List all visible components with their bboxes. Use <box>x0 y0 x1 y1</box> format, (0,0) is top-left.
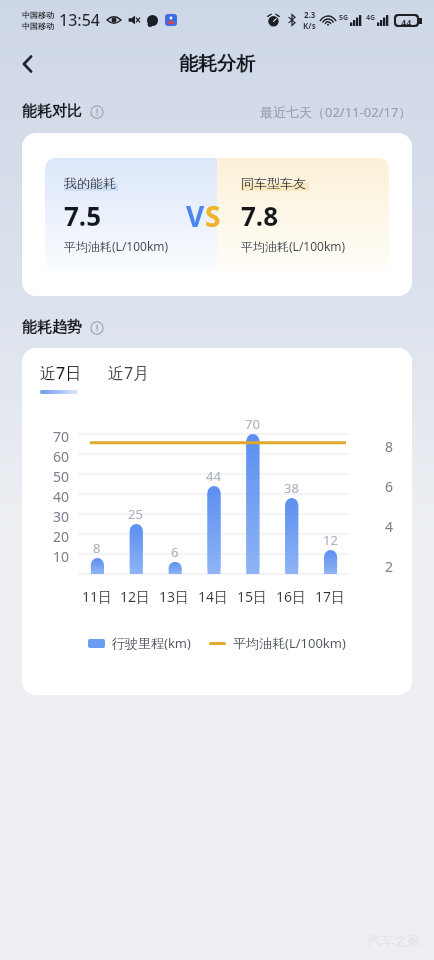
staticText: 13日 <box>159 587 190 606</box>
staticText: 平均油耗(L/100km) <box>233 634 346 652</box>
staticText: 13:54 <box>59 9 100 31</box>
staticText: 12 <box>323 531 338 549</box>
staticText: 15日 <box>237 587 268 606</box>
staticText: 7.5 <box>64 198 102 233</box>
staticText: 7.8 <box>241 198 279 233</box>
staticText: 60 <box>53 447 70 466</box>
staticText: 近7日 <box>40 362 82 384</box>
staticText: 能耗对比 <box>22 102 82 121</box>
staticText: 我的能耗 <box>64 175 116 191</box>
staticText: 14日 <box>198 587 229 606</box>
staticText: 2.3 <box>304 9 316 20</box>
button[interactable]: 说明 <box>89 104 104 119</box>
button[interactable]: 我的能耗 <box>22 133 412 296</box>
button[interactable]: 返回 <box>6 42 50 86</box>
staticText: 16日 <box>276 587 307 606</box>
button[interactable]: 说明 <box>89 320 104 335</box>
staticText: 平均油耗(L/100km) <box>64 238 169 254</box>
staticText: 中国移动 <box>22 21 54 31</box>
staticText: 能耗分析 <box>179 52 255 76</box>
staticText: 70 <box>53 427 70 446</box>
staticText: 25 <box>128 505 143 523</box>
staticText: 38 <box>284 479 299 497</box>
staticText: 44 <box>206 467 221 485</box>
staticText: 同车型车友 <box>241 175 306 191</box>
staticText: 17日 <box>315 587 346 606</box>
staticText: K/s <box>303 20 316 31</box>
staticText: 近7月 <box>108 362 150 384</box>
staticText: 30 <box>53 507 70 526</box>
staticText: 8 <box>93 539 101 557</box>
staticText: 2 <box>385 557 394 576</box>
staticText: 8 <box>385 437 394 456</box>
staticText: 最近七天（02/11-02/17） <box>260 103 412 121</box>
staticText: 44 <box>401 16 412 25</box>
staticText: 5G <box>339 13 349 23</box>
staticText: 能耗趋势 <box>22 318 82 337</box>
staticText: S <box>205 197 221 235</box>
staticText: 4 <box>385 517 394 536</box>
staticText: 中国移动 <box>22 10 54 20</box>
staticText: 6 <box>385 477 394 496</box>
staticText: 12日 <box>120 587 151 606</box>
staticText: 行驶里程(km) <box>112 634 191 652</box>
staticText: 6 <box>171 543 179 561</box>
staticText: 4G <box>366 13 376 23</box>
button[interactable]: 近7日 <box>40 362 82 394</box>
staticText: V <box>186 197 205 235</box>
button[interactable]: 近7月 <box>108 362 150 394</box>
staticText: 11日 <box>82 587 113 606</box>
staticText: 平均油耗(L/100km) <box>241 238 346 254</box>
staticText: 20 <box>53 527 70 546</box>
staticText: 汽车之家 <box>368 932 420 948</box>
staticText: 10 <box>53 547 70 566</box>
staticText: 50 <box>53 467 70 486</box>
staticText: 40 <box>53 487 70 506</box>
staticText: 70 <box>245 415 260 433</box>
